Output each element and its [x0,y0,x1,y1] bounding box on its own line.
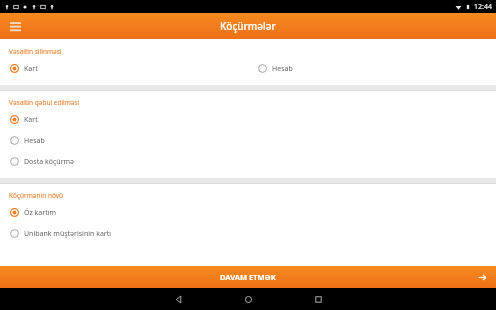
button[interactable]: Kart [0,58,248,79]
staticText: Kart [24,64,38,74]
button[interactable]: Hesab [248,58,496,79]
staticText: Vəsaitin qəbul edilməsi [9,98,80,107]
staticText: Köçürmələr [220,19,276,33]
button[interactable]: Unibank müştərisinin kartı [0,223,496,244]
staticText: DAVAM ETMƏK [220,272,276,282]
button[interactable]: DAVAM ETMƏK [0,266,496,288]
staticText: Hesab [272,64,293,74]
button[interactable]: Home [226,288,270,310]
staticText: Dosta köçürmə [24,157,75,167]
button[interactable]: Recent apps [296,288,340,310]
staticText: Öz kartım [24,208,57,218]
staticText: 12:44 [474,2,492,12]
button[interactable]: Hesab [0,130,496,151]
staticText: Unibank müştərisinin kartı [24,229,112,239]
button[interactable]: Dosta köçürmə [0,151,496,172]
button[interactable]: Open navigation menu [5,16,25,36]
staticText: Hesab [24,136,45,146]
button[interactable]: Back [156,288,200,310]
button[interactable]: Kart [0,109,496,130]
button[interactable]: Öz kartım [0,202,496,223]
staticText: Vəsaitin silinməsi [9,47,62,56]
staticText: Kart [24,115,38,125]
staticText: Köçürmənin növü [9,191,64,200]
